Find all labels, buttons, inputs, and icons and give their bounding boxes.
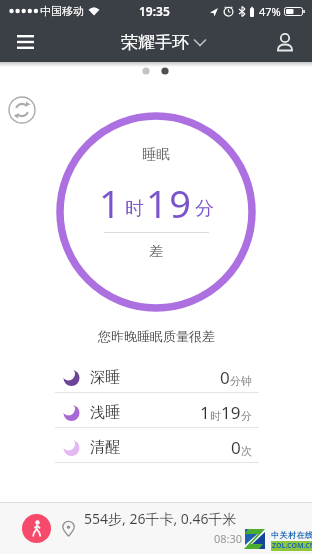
staticText: 分钟 (230, 374, 252, 388)
staticText: 差 (149, 243, 163, 261)
staticText: 中国移动 (40, 4, 84, 18)
staticText: 1 (99, 177, 123, 229)
staticText: 时 (125, 197, 144, 221)
staticText: 分 (195, 197, 214, 221)
staticText: 19 (221, 401, 241, 424)
button[interactable]: 深睡 (0, 362, 312, 392)
button[interactable] (22, 514, 51, 543)
staticText: 睡眠 (142, 146, 170, 164)
staticText: 荣耀手环 (121, 32, 189, 53)
staticText: 19:35 (139, 3, 170, 19)
button[interactable]: 浅睡 (0, 397, 312, 427)
staticText: 中关村在线 (271, 530, 312, 540)
staticText: 您昨晚睡眠质量很差 (98, 328, 215, 344)
button[interactable] (8, 96, 36, 124)
staticText: 19 (146, 177, 193, 229)
staticText: 时 (210, 409, 221, 423)
staticText: 深睡 (90, 368, 120, 387)
button[interactable] (9, 26, 41, 58)
staticText: 次 (241, 444, 252, 458)
staticText: 1 (200, 401, 210, 424)
staticText: 08:30 (214, 531, 243, 546)
staticText: 554步, 26千卡, 0.46千米 (84, 509, 237, 528)
staticText: ZOL.COM.CN (272, 541, 312, 551)
staticText: 浅睡 (90, 403, 120, 422)
staticText: 0 (220, 366, 230, 389)
staticText: 分 (241, 409, 252, 423)
staticText: 0 (231, 436, 241, 459)
staticText: 47% (259, 4, 281, 19)
button[interactable]: 荣耀手环 (121, 32, 206, 53)
staticText: 清醒 (90, 438, 120, 457)
button[interactable]: 清醒 (0, 432, 312, 462)
button[interactable] (271, 28, 299, 56)
